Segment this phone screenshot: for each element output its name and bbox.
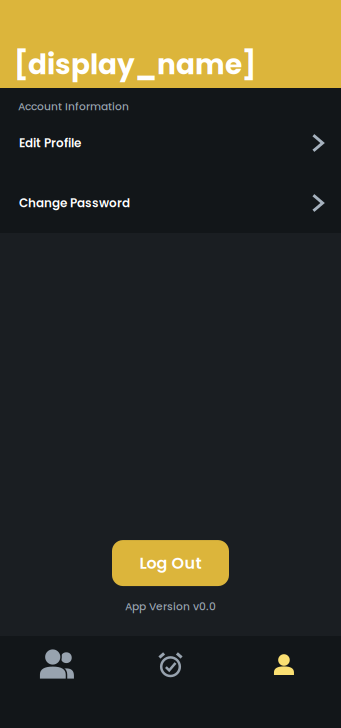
- button[interactable]: Profile: [227, 636, 341, 728]
- staticText: Change Password: [19, 195, 130, 211]
- button[interactable]: Alarms: [114, 636, 227, 728]
- staticText: App Version v0.0: [125, 599, 216, 614]
- button[interactable]: Friends: [0, 636, 114, 728]
- staticText: [display_name]: [14, 45, 256, 84]
- button[interactable]: Change Password: [0, 173, 341, 233]
- staticText: Account Information: [18, 99, 129, 114]
- staticText: Log Out: [139, 552, 201, 574]
- button[interactable]: Log Out: [112, 540, 229, 586]
- staticText: Edit Profile: [19, 135, 81, 151]
- button[interactable]: Edit Profile: [0, 113, 341, 173]
